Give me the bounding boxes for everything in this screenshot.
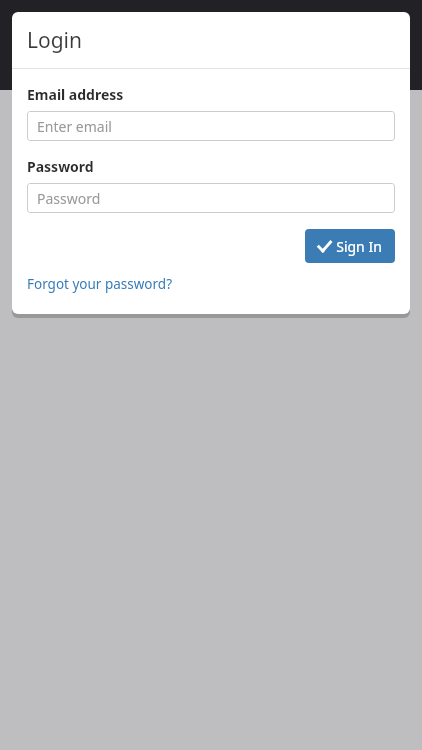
button[interactable]: Sign In check	[305, 229, 395, 263]
staticText: Sign In	[336, 237, 382, 256]
staticText: Enter email	[37, 117, 112, 136]
button[interactable]: Password	[27, 183, 395, 213]
staticText: Email address	[27, 85, 124, 104]
staticText: Login	[27, 26, 83, 55]
button[interactable]: Enter email	[27, 111, 395, 141]
button[interactable]: Forgot your password?	[27, 273, 173, 295]
staticText: Password	[27, 157, 94, 176]
other: Sign In check	[318, 240, 331, 253]
staticText: Password	[37, 189, 101, 208]
